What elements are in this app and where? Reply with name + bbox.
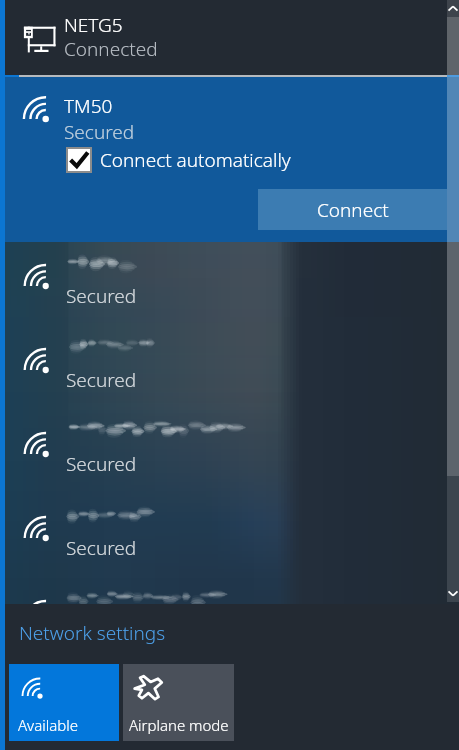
button[interactable]: NETG5 bbox=[5, 0, 459, 75]
button[interactable]: Network settings bbox=[19, 620, 166, 646]
button[interactable]: Secured bbox=[5, 494, 459, 578]
button[interactable]: Scroll up bbox=[447, 0, 459, 17]
button[interactable]: Secured bbox=[5, 410, 459, 494]
button[interactable]: Secured bbox=[5, 242, 459, 326]
staticText: Airplane mode bbox=[129, 715, 229, 735]
staticText: Secured bbox=[64, 119, 135, 145]
staticText: Secured bbox=[66, 535, 137, 561]
staticText: Secured bbox=[66, 451, 137, 477]
button[interactable]: Connect automatically bbox=[66, 147, 291, 173]
button[interactable]: Available bbox=[9, 664, 119, 741]
staticText: Connect bbox=[317, 197, 389, 223]
button[interactable]: Connect bbox=[258, 189, 447, 230]
staticText: NETG5 bbox=[64, 12, 123, 38]
button[interactable]: Secured bbox=[5, 578, 459, 604]
button[interactable]: TM50 bbox=[5, 77, 459, 242]
staticText: TM50 bbox=[64, 93, 113, 119]
staticText: Secured bbox=[66, 619, 137, 645]
button[interactable]: Secured bbox=[5, 326, 459, 410]
button[interactable]: Scroll down bbox=[447, 585, 459, 602]
staticText: Secured bbox=[66, 283, 137, 309]
staticText: Secured bbox=[66, 367, 137, 393]
staticText: Connect automatically bbox=[100, 147, 291, 173]
button[interactable]: Airplane mode bbox=[123, 664, 234, 741]
staticText: Connected bbox=[64, 36, 158, 62]
staticText: Available bbox=[18, 715, 78, 735]
